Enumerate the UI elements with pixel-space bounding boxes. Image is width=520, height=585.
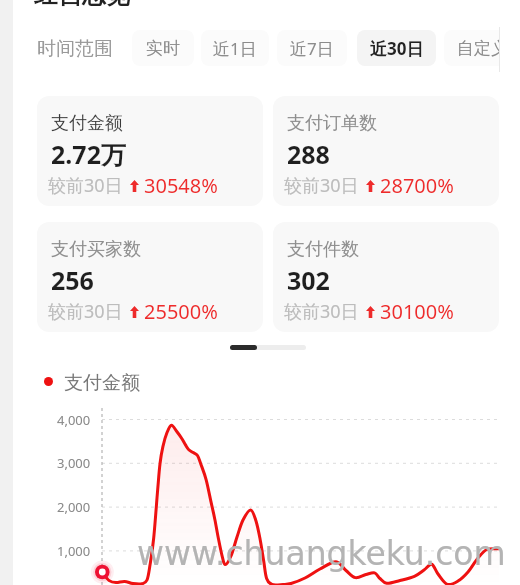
staticText: 近1日	[213, 37, 257, 60]
button[interactable]: 支付件数	[273, 222, 499, 332]
staticText: 支付件数	[287, 238, 359, 261]
button[interactable]: 近7日	[277, 30, 347, 66]
staticText: 经营总览	[34, 0, 130, 10]
button[interactable]: 支付金额	[37, 96, 263, 206]
staticText: www.chuangkeku.com	[137, 534, 506, 572]
staticText: 支付金额	[64, 371, 140, 395]
button[interactable]: 近30日	[357, 30, 436, 66]
staticText: 30100%	[380, 298, 454, 325]
staticText: 支付金额	[51, 112, 123, 135]
button[interactable]: 支付买家数	[37, 222, 263, 332]
staticText: 支付订单数	[287, 112, 377, 135]
button[interactable]: 实时	[132, 30, 194, 66]
staticText: 2.72万	[51, 137, 126, 171]
button[interactable]: 支付订单数	[273, 96, 499, 206]
staticText: 时间范围	[37, 37, 113, 61]
staticText: 近7日	[290, 37, 334, 60]
staticText: 较前30日	[48, 299, 123, 324]
staticText: 302	[287, 263, 330, 297]
button[interactable]: 自定义	[444, 30, 520, 66]
staticText: 实时	[146, 38, 180, 59]
staticText: 较前30日	[284, 299, 359, 324]
staticText: 28700%	[380, 172, 454, 199]
staticText: 自定义	[457, 38, 508, 59]
staticText: 近30日	[370, 37, 424, 60]
staticText: 30548%	[144, 172, 218, 199]
button[interactable]: 近1日	[201, 30, 269, 66]
staticText: 支付买家数	[51, 238, 141, 261]
staticText: 4,000	[57, 411, 91, 429]
staticText: 2,000	[57, 498, 91, 516]
staticText: 256	[51, 263, 94, 297]
staticText: 25500%	[144, 298, 218, 325]
staticText: 较前30日	[284, 173, 359, 198]
staticText: 1,000	[57, 542, 91, 560]
staticText: 较前30日	[48, 173, 123, 198]
staticText: 288	[287, 137, 330, 171]
staticText: 3,000	[57, 454, 91, 472]
